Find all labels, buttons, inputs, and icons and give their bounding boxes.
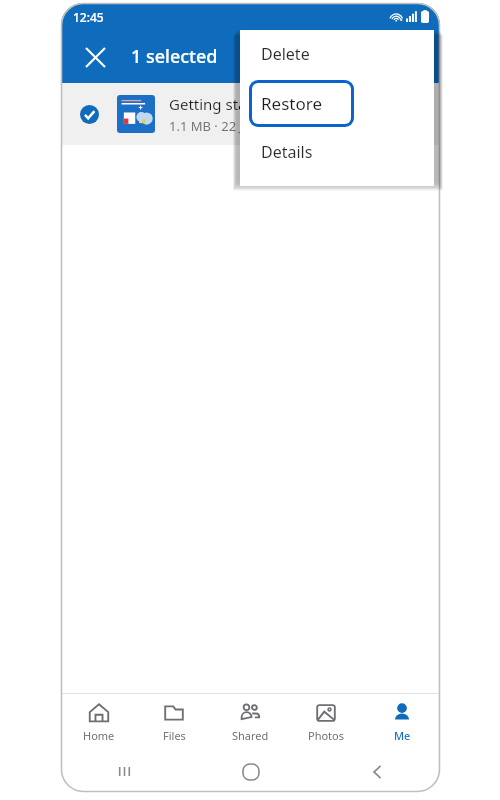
staticText: Getting started with OneDrive.pdf xyxy=(169,94,409,114)
button[interactable]: Details xyxy=(240,128,434,176)
button[interactable]: Close selection xyxy=(73,35,117,79)
button[interactable]: Home xyxy=(188,751,314,792)
staticText: Home xyxy=(83,728,115,743)
staticText: Shared xyxy=(232,728,269,743)
staticText: Delete xyxy=(261,43,310,65)
button[interactable]: Files xyxy=(136,694,212,751)
staticText: Files xyxy=(163,728,186,743)
button[interactable]: Photos xyxy=(288,694,364,751)
button[interactable]: Shared xyxy=(212,694,288,751)
staticText: 12:45 xyxy=(73,9,104,25)
button[interactable]: Delete xyxy=(240,30,434,78)
button[interactable]: Back xyxy=(314,751,440,792)
staticText: Details xyxy=(261,141,313,163)
button[interactable]: Home xyxy=(61,694,136,751)
staticText: Photos xyxy=(308,728,345,743)
staticText: 1 selected xyxy=(131,44,218,69)
staticText: Restore xyxy=(261,92,322,115)
staticText: Me xyxy=(394,728,411,743)
button[interactable]: Getting started with OneDrive.pdf xyxy=(61,83,440,145)
button[interactable]: Me xyxy=(364,694,440,751)
button[interactable]: Recents xyxy=(61,751,188,792)
button[interactable]: Restore xyxy=(240,78,434,128)
staticText: 1.1 MB · 22 Jan xyxy=(169,117,259,135)
